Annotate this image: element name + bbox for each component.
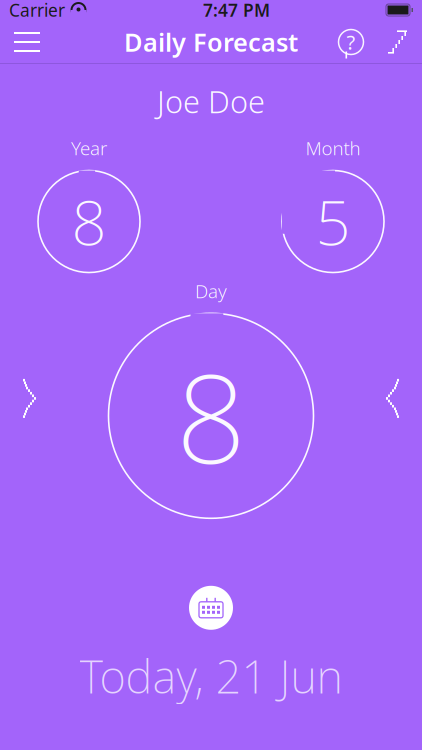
staticText: 8 (176, 334, 246, 497)
staticText: Year (71, 136, 107, 160)
button[interactable]: Today, 21 Jun (79, 586, 342, 706)
button[interactable]: Previous day (14, 374, 40, 422)
staticText: Day (195, 278, 227, 303)
staticText: Today, 21 Jun (79, 646, 342, 706)
staticText: Month (305, 136, 360, 160)
staticText: 5 (315, 181, 350, 262)
staticText: Daily Forecast (124, 25, 298, 59)
button[interactable]: Menu (5, 20, 49, 64)
button[interactable]: Next day (382, 374, 408, 422)
button[interactable]: Help (329, 20, 373, 64)
button[interactable]: Edit (373, 20, 417, 64)
staticText: 7:47 PM (203, 0, 270, 21)
staticText: 8 (71, 181, 106, 262)
staticText: Carrier (9, 0, 65, 21)
staticText: Joe Doe (157, 81, 265, 122)
staticText: ? (346, 29, 355, 55)
